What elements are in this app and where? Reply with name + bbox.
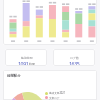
- staticText: 時間: [29, 62, 35, 66]
- button[interactable]: [3, 0, 97, 45]
- button[interactable]: 構成文章2021: [45, 91, 66, 95]
- button[interactable]: 文章ログ: [45, 96, 60, 99]
- button[interactable]: 勉強時間: [5, 49, 47, 66]
- staticText: 構成文章2021: [49, 91, 66, 95]
- button[interactable]: ログ数: [53, 49, 95, 66]
- staticText: 1091: [18, 60, 29, 66]
- staticText: 文章ログ: [49, 96, 60, 99]
- button[interactable]: [3, 70, 97, 100]
- staticText: 勉強時間: [21, 56, 33, 60]
- staticText: ログ数: [70, 56, 79, 60]
- staticText: 1635: [69, 60, 80, 66]
- staticText: 時間配分: [7, 74, 21, 78]
